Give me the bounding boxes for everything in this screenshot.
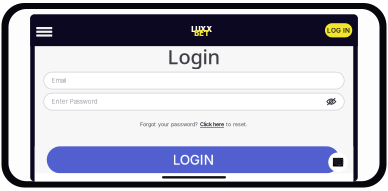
button[interactable]: Show password [326,98,336,106]
staticText: Enter Password [52,98,98,105]
button[interactable]: LOGIN [47,146,340,173]
staticText: Login [167,43,220,70]
staticText: Email [52,77,66,84]
staticText: LOG IN [327,26,350,34]
staticText: LUXX [191,25,212,34]
staticText: LOGIN [173,152,214,168]
staticText: Click here [200,121,224,128]
staticText: to reset. [226,121,248,128]
staticText: Forgot your password? [140,121,198,128]
button[interactable]: LOG IN [325,23,352,37]
staticText: BET [194,29,209,38]
button[interactable]: Chat support [328,152,348,172]
button[interactable]: Menu [36,19,58,41]
button[interactable]: Click here [200,121,224,128]
